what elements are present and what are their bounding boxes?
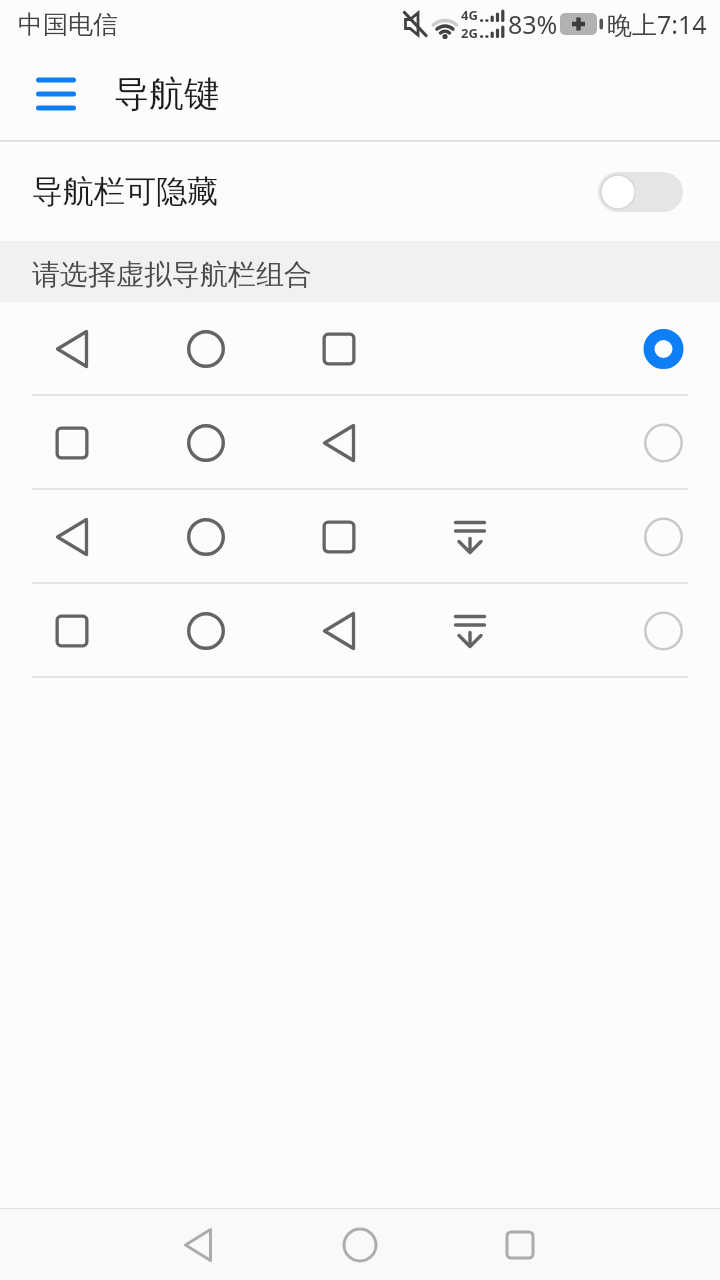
staticText: 导航键 [114,72,219,116]
button[interactable] [0,396,720,490]
staticText: 2G [461,24,478,42]
staticText: 中国电信 [18,9,118,40]
button[interactable] [0,60,76,128]
staticText: 83% [508,7,558,41]
staticText: 4G [461,6,478,24]
button[interactable] [120,1209,280,1280]
button[interactable] [0,302,720,396]
staticText: 请选择虚拟导航栏组合 [32,257,312,292]
button[interactable] [440,1209,600,1280]
button[interactable] [0,584,720,678]
staticText: 晚上7:14 [607,7,707,41]
staticText: 导航栏可隐藏 [32,172,218,211]
button[interactable]: 导航栏可隐藏 [0,142,720,241]
button[interactable] [0,490,720,584]
button[interactable] [280,1209,440,1280]
